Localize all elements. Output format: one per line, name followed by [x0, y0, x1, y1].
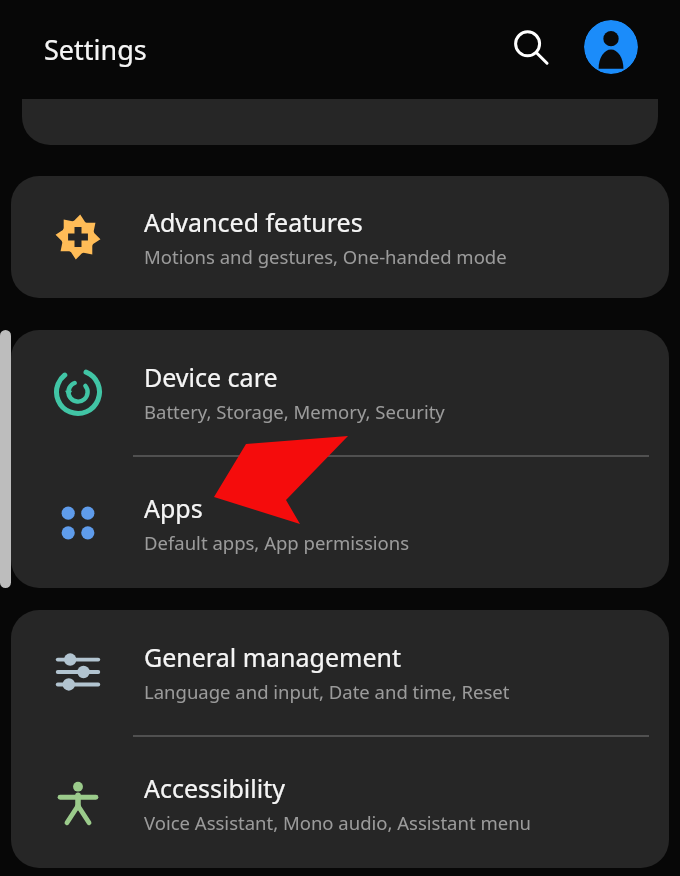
staticText: Voice Assistant, Mono audio, Assistant m…: [144, 810, 532, 835]
button[interactable]: Account: [584, 20, 638, 74]
button[interactable]: General management: [11, 610, 669, 734]
staticText: General management: [144, 640, 401, 674]
button[interactable]: Device care: [11, 330, 669, 454]
staticText: Motions and gestures, One-handed mode: [144, 244, 507, 269]
staticText: Default apps, App permissions: [144, 530, 410, 555]
staticText: Advanced features: [144, 205, 363, 239]
staticText: Settings: [44, 31, 147, 68]
button[interactable]: Search: [503, 20, 557, 74]
button[interactable]: [22, 99, 658, 145]
staticText: Language and input, Date and time, Reset: [144, 679, 510, 704]
button[interactable]: Accessibility: [11, 738, 669, 868]
staticText: Device care: [144, 360, 278, 394]
staticText: Accessibility: [144, 771, 285, 805]
staticText: Battery, Storage, Memory, Security: [144, 399, 445, 424]
button[interactable]: Apps: [11, 458, 669, 588]
staticText: Apps: [144, 491, 203, 525]
button[interactable]: Advanced features: [11, 176, 669, 298]
